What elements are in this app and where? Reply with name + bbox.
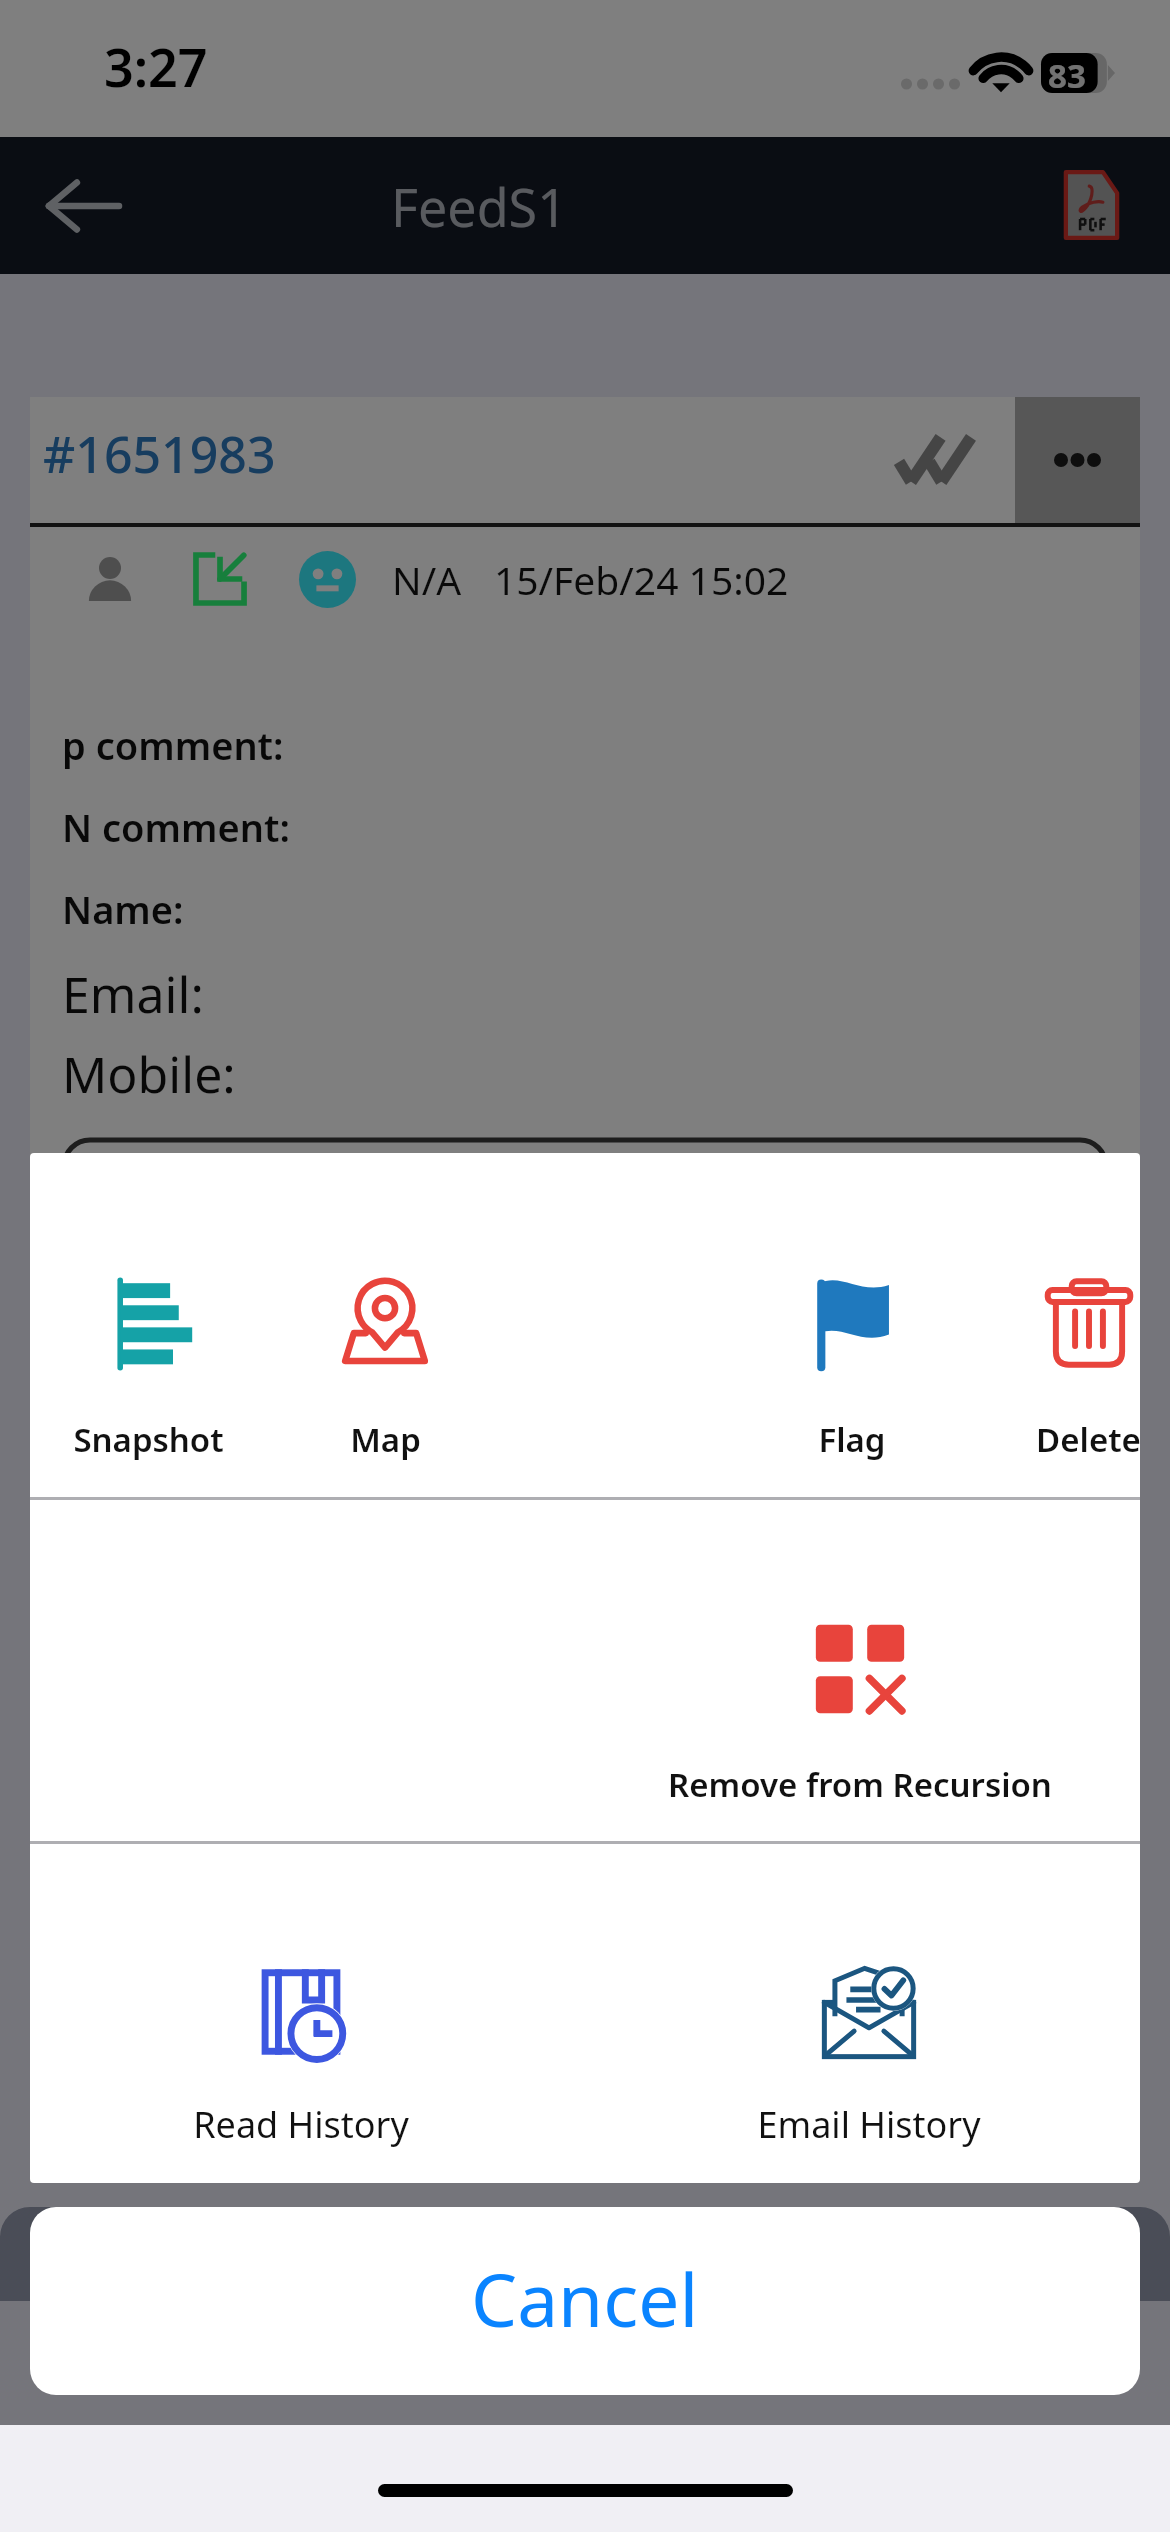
staticText: FeedS1 [391,171,567,242]
button[interactable]: Cancel [30,2207,1140,2395]
staticText: 15/Feb/24 15:02 [494,553,789,606]
staticText: Mobile: [62,1040,236,1108]
staticText: 3:27 [104,31,208,102]
button[interactable]: Flag [662,1276,1042,1496]
staticText: Delete [1036,1417,1140,1462]
button[interactable]: Read History [111,1964,491,2183]
staticText: Snapshot [73,1417,224,1462]
button[interactable]: Back [20,143,146,269]
button[interactable]: Navigation item [550,2227,620,2297]
staticText: Name: [62,883,184,935]
button[interactable]: Remove from Recursion [670,1621,1050,1841]
staticText: Read History [193,2100,409,2149]
staticText: Cancel [471,2249,699,2348]
staticText: #1651983 [43,420,276,488]
button[interactable]: Email History [679,1964,1059,2183]
staticText: 83 [1048,53,1086,91]
staticText: Flag [818,1417,886,1462]
staticText: Remove from Recursion [668,1762,1052,1807]
button[interactable]: More options [1015,397,1140,523]
staticText: N comment: [62,801,290,853]
staticText: p comment: [62,719,284,771]
button[interactable]: Snapshot [30,1276,338,1496]
staticText: Email History [757,2100,981,2149]
staticText: N/A [392,553,462,606]
staticText: Email: [62,960,204,1028]
button[interactable]: Export PDF [1036,151,1146,261]
staticText: Map [350,1417,421,1462]
button[interactable]: Map [195,1276,575,1496]
button[interactable]: Delete [898,1276,1140,1496]
